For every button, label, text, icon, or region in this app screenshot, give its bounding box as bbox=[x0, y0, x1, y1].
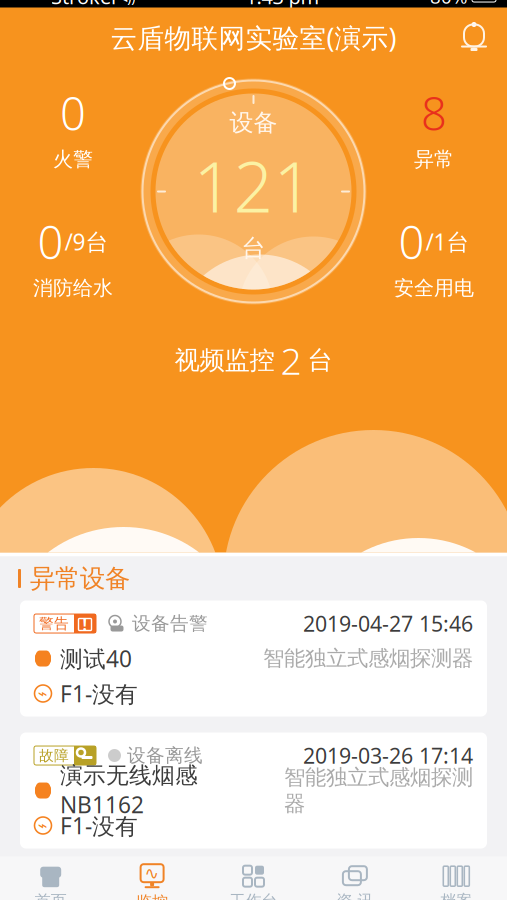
staticText: ⌁ bbox=[38, 684, 48, 703]
staticText: ◂)) bbox=[120, 0, 135, 6]
staticText: 2 bbox=[280, 335, 301, 385]
staticText: 设备 bbox=[229, 108, 277, 137]
staticText: 智能独立式感烟探测器 bbox=[263, 645, 473, 672]
button[interactable]: 故障 bbox=[20, 732, 487, 848]
staticText: 80% bbox=[430, 0, 468, 9]
staticText: 档案 bbox=[440, 891, 472, 900]
staticText: 消防给水 bbox=[33, 276, 113, 300]
staticText: 异常设备 bbox=[30, 563, 130, 594]
staticText: 0 bbox=[37, 211, 63, 272]
staticText: F1-没有 bbox=[60, 810, 138, 841]
button[interactable]: 首页 bbox=[0, 857, 101, 900]
staticText: 云盾物联网实验室(演示) bbox=[110, 20, 396, 55]
staticText: F1-没有 bbox=[60, 678, 138, 709]
staticText: 台 bbox=[307, 345, 332, 376]
staticText: Strokei bbox=[51, 0, 116, 10]
staticText: 2019-03-26 17:14 bbox=[303, 741, 473, 770]
staticText: 视频监控 bbox=[174, 345, 274, 376]
staticText: 警告 bbox=[39, 614, 69, 632]
button[interactable]: 档案 bbox=[406, 857, 507, 900]
staticText: ⌁ bbox=[38, 816, 48, 835]
staticText: 异常 bbox=[414, 147, 454, 171]
button[interactable]: 通知 bbox=[457, 20, 507, 54]
staticText: 2019-04-27 15:46 bbox=[303, 609, 473, 638]
staticText: 0 bbox=[60, 83, 86, 143]
button[interactable]: ∿ bbox=[101, 857, 203, 900]
staticText: 故障 bbox=[39, 746, 69, 764]
staticText: 监控 bbox=[136, 892, 168, 900]
staticText: 8 bbox=[421, 83, 447, 143]
staticText: 设备告警 bbox=[132, 612, 208, 635]
staticText: 设备离线 bbox=[127, 744, 203, 767]
staticText: 首页 bbox=[35, 891, 67, 900]
staticText: 0 bbox=[398, 211, 424, 272]
button[interactable]: 警告 bbox=[20, 600, 487, 716]
staticText: /9台 bbox=[64, 226, 108, 257]
staticText: 演示无线烟感NB1162 bbox=[60, 761, 198, 819]
staticText: 测试40 bbox=[60, 643, 132, 673]
staticText: ! bbox=[82, 614, 87, 635]
button[interactable]: 工作台 bbox=[203, 857, 304, 900]
staticText: 火警 bbox=[53, 147, 93, 171]
staticText: 工作台 bbox=[229, 891, 277, 900]
staticText: 安全用电 bbox=[394, 276, 474, 300]
staticText: 121 bbox=[193, 139, 313, 232]
button[interactable]: 资 讯 bbox=[304, 857, 406, 900]
staticText: /1台 bbox=[425, 226, 469, 257]
staticText: 台 bbox=[241, 233, 265, 263]
staticText: 1:43 pm bbox=[245, 0, 319, 10]
staticText: 智能独立式感烟探测器 bbox=[284, 764, 473, 817]
staticText: 资 讯 bbox=[336, 891, 373, 900]
staticText: ∿ bbox=[145, 863, 160, 883]
